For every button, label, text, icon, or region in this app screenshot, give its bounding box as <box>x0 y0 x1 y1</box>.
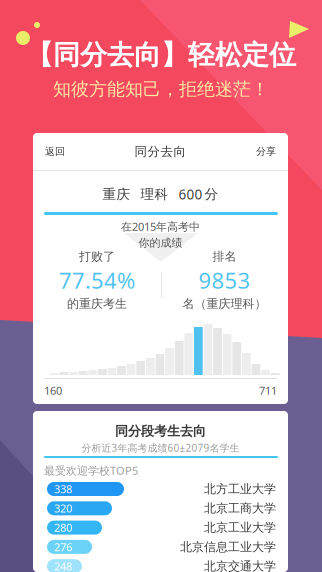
staticText: 9853 <box>198 265 250 295</box>
staticText: 同分去向 <box>134 144 186 159</box>
staticText: 北方工业大学 <box>204 481 276 496</box>
staticText: 北京工商大学 <box>204 501 276 516</box>
staticText: 打败了 <box>79 249 115 264</box>
staticText: 的重庆考生 <box>67 296 127 311</box>
staticText: 同分段考生去向 <box>115 423 206 439</box>
staticText: 160 <box>44 383 62 398</box>
button[interactable]: 分享 <box>244 133 288 170</box>
staticText: 名（重庆理科） <box>182 296 266 311</box>
staticText: 知彼方能知己，拒绝迷茫！ <box>53 78 269 101</box>
staticText: 北京交通大学 <box>204 559 276 572</box>
staticText: 338 <box>54 481 72 496</box>
staticText: 77.54% <box>59 265 135 295</box>
staticText: 你的成绩 <box>138 236 182 250</box>
staticText: 重庆 <box>102 186 130 203</box>
staticText: 分 <box>204 186 218 203</box>
staticText: 280 <box>54 520 72 535</box>
staticText: 711 <box>259 383 277 398</box>
staticText: 276 <box>54 539 72 554</box>
staticText: 北京工业大学 <box>204 520 276 535</box>
staticText: 北京信息工业大学 <box>180 539 276 554</box>
staticText: 600 <box>178 185 202 203</box>
staticText: 理科 <box>140 186 168 203</box>
staticText: 【同分去向】轻松定位 <box>26 38 296 72</box>
staticText: 在2015年高考中 <box>121 219 200 234</box>
button[interactable]: 返回 <box>33 133 77 170</box>
staticText: 排名 <box>212 249 236 264</box>
staticText: 分析近3年高考成绩60±2079名学生 <box>81 441 239 455</box>
staticText: 返回 <box>45 145 65 158</box>
staticText: 分享 <box>256 145 276 158</box>
staticText: 最受欢迎学校TOP5 <box>44 463 138 478</box>
staticText: 320 <box>54 501 72 516</box>
staticText: 248 <box>54 559 72 572</box>
